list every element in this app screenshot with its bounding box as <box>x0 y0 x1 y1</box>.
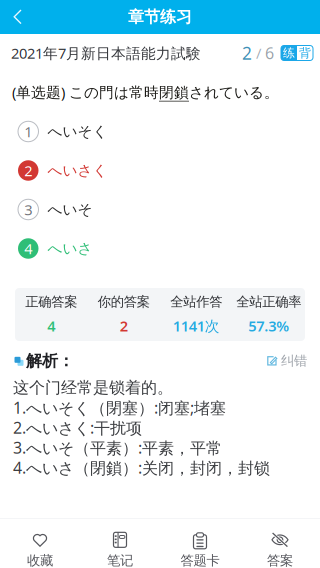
button[interactable]: 收藏 <box>0 518 80 568</box>
staticText: 练 <box>283 46 295 60</box>
button[interactable]: 4 <box>0 229 320 268</box>
staticText: (单选题) この門は常時閉鎖されている。 <box>12 82 279 102</box>
staticText: 6 <box>265 42 274 64</box>
staticText: 你的答案 <box>98 294 150 310</box>
staticText: 2 <box>242 41 252 64</box>
staticText: 1141次 <box>173 316 220 335</box>
staticText: 全站正确率 <box>236 294 301 310</box>
button[interactable]: 2 <box>0 151 320 190</box>
button[interactable]: Back <box>0 0 37 34</box>
staticText: 2 <box>120 316 128 335</box>
staticText: 全站作答 <box>170 294 222 310</box>
staticText: 1.へいそく（閉塞）:闭塞;堵塞 <box>13 397 226 418</box>
staticText: へいそ <box>47 200 92 218</box>
staticText: 答案 <box>267 552 293 568</box>
staticText: 答题卡 <box>180 552 219 568</box>
staticText: 正确答案 <box>25 294 77 310</box>
button[interactable]: 纠错 <box>267 353 307 369</box>
button[interactable]: 答案 <box>240 518 320 568</box>
staticText: 2021年7月新日本語能力試験 <box>11 43 201 63</box>
staticText: 2.へいさく:干扰项 <box>13 417 142 438</box>
staticText: 4.へいさ（閉鎖）:关闭，封闭，封锁 <box>13 457 270 478</box>
staticText: 4 <box>24 239 32 258</box>
button[interactable]: 练 <box>274 45 313 60</box>
staticText: へいさく <box>47 161 107 179</box>
button[interactable]: 答题卡 <box>160 518 240 568</box>
staticText: へいそく <box>47 122 107 140</box>
staticText: 背 <box>299 46 311 60</box>
staticText: 4 <box>47 316 55 335</box>
staticText: へいさ <box>47 239 92 257</box>
staticText: 收藏 <box>27 552 53 568</box>
staticText: 3.へいそ（平素）:平素，平常 <box>13 437 222 458</box>
staticText: / <box>252 43 265 63</box>
button[interactable]: 1 <box>0 112 320 151</box>
staticText: 3 <box>24 200 32 219</box>
staticText: 纠错 <box>281 353 307 369</box>
button[interactable]: 笔记 <box>80 518 160 568</box>
staticText: 57.3% <box>248 316 289 335</box>
staticText: 1 <box>24 122 32 141</box>
staticText: 解析： <box>26 351 74 371</box>
staticText: 2 <box>24 161 32 180</box>
button[interactable]: 3 <box>0 190 320 229</box>
staticText: 笔记 <box>107 552 133 568</box>
staticText: 这个门经常是锁着的。 <box>13 378 173 397</box>
staticText: 章节练习 <box>128 7 192 27</box>
